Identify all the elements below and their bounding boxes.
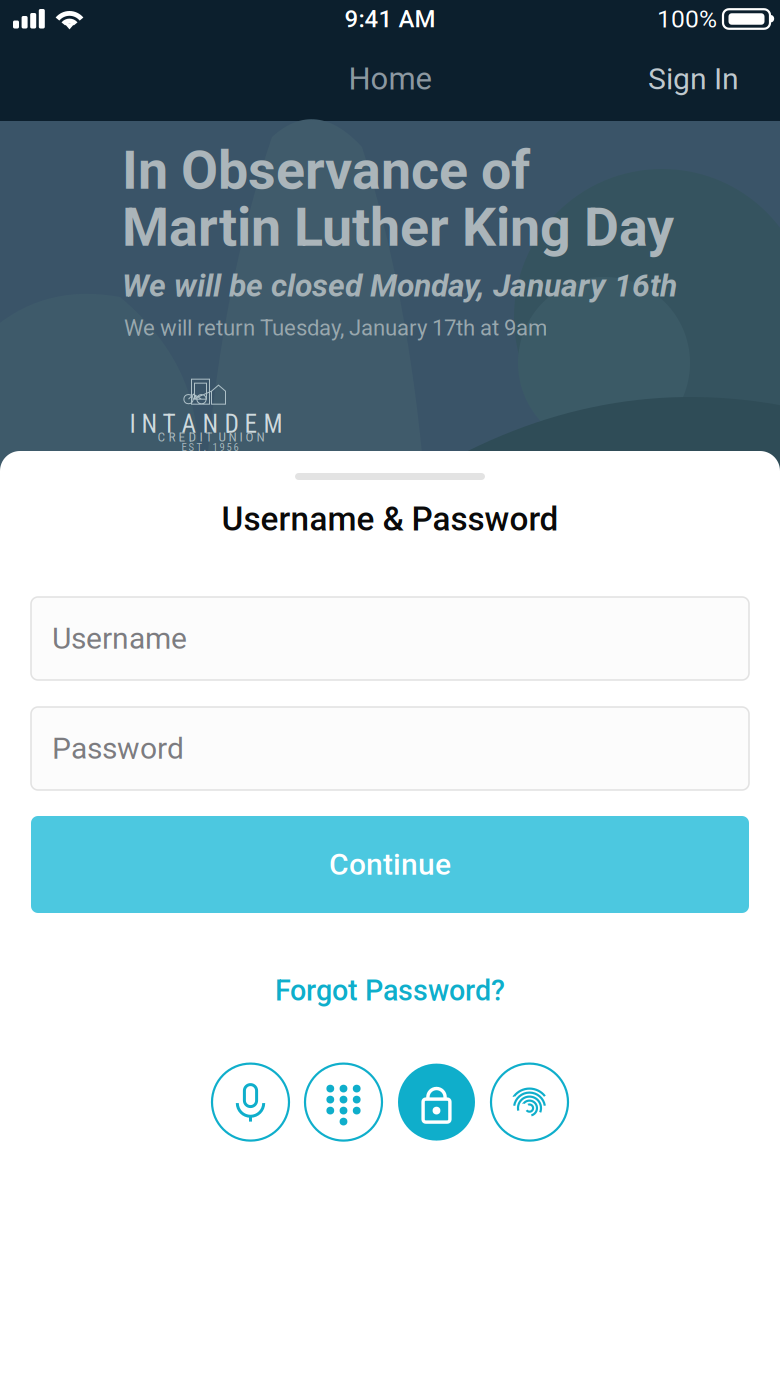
staticText: Username [52,621,187,656]
staticText: Forgot Password? [275,974,505,1008]
button[interactable]: Forgot Password? [259,964,521,1018]
staticText: We will be closed Monday, January 16th [122,267,677,304]
staticText: E S T . 1 9 5 6 [181,441,238,454]
staticText: Sign In [648,61,739,97]
staticText: 100% [657,4,717,33]
staticText: We will return Tuesday, January 17th at … [124,315,547,341]
button[interactable]: Passcode login [305,1064,382,1141]
button[interactable]: Password [31,707,749,790]
staticText: Continue [329,847,451,882]
button[interactable]: Username [31,597,749,680]
staticText: Username & Password [221,499,558,539]
button[interactable]: Password login [398,1064,475,1141]
button[interactable]: Touch ID login [491,1064,568,1141]
staticText: In Observance of [122,139,530,202]
staticText: C R E D I T U N I O N [157,429,264,445]
staticText: I N T A N D E M [129,409,282,439]
button[interactable]: Continue [31,816,749,913]
button[interactable]: Voice login [212,1064,289,1141]
staticText: Password [52,731,184,766]
staticText: 9:41 AM [344,5,435,33]
staticText: Martin Luther King Day [122,196,674,259]
button[interactable]: Sign In [632,47,755,111]
staticText: Home [348,61,431,97]
